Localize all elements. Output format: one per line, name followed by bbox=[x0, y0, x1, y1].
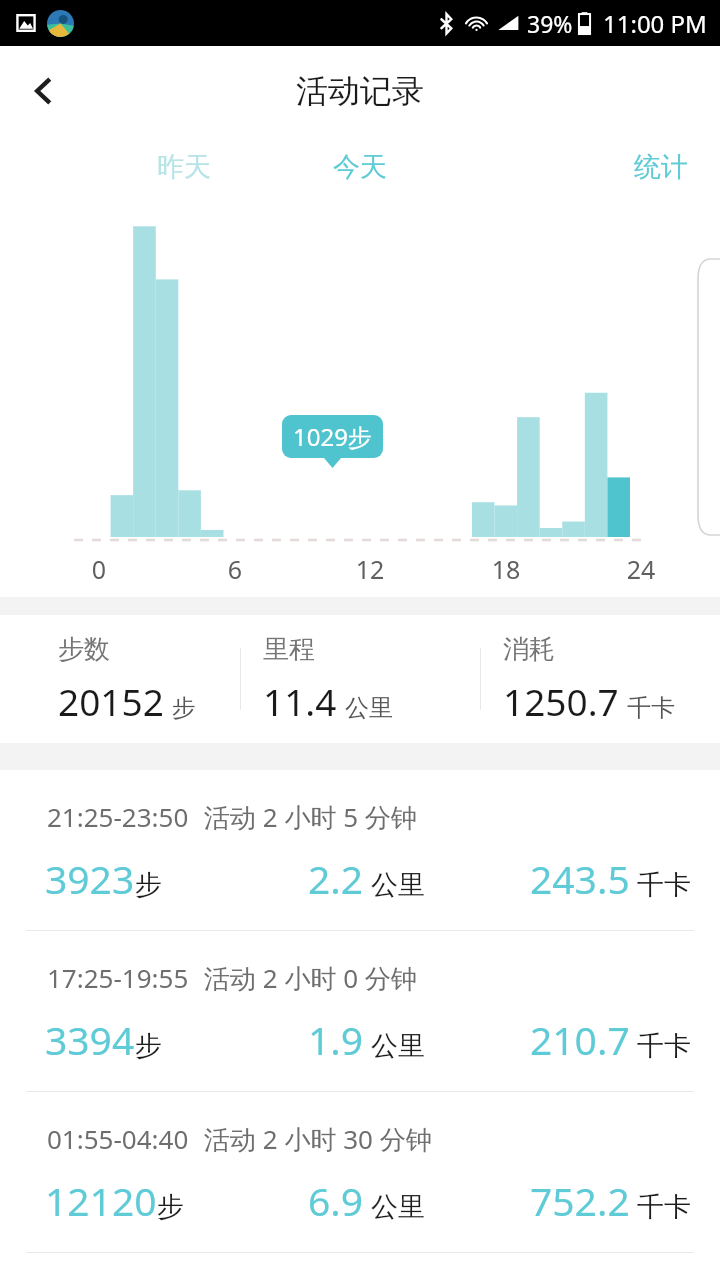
staticText: 步 bbox=[172, 693, 196, 723]
staticText: 1.9 bbox=[308, 1013, 364, 1066]
staticText: 20152 bbox=[58, 676, 164, 726]
staticText: 活动 2 小时 0 分钟 bbox=[204, 960, 417, 996]
staticText: 24 bbox=[617, 552, 665, 586]
staticText: 11.4 bbox=[263, 676, 337, 726]
staticText: 千卡 bbox=[627, 693, 675, 723]
staticText: 1250.7 bbox=[503, 676, 619, 726]
staticText: 12 bbox=[346, 552, 394, 586]
staticText: 公里 bbox=[371, 1029, 425, 1063]
button[interactable]: 步数 bbox=[0, 615, 240, 743]
staticText: 活动 2 小时 5 分钟 bbox=[204, 799, 417, 835]
staticText: 公里 bbox=[371, 1190, 425, 1224]
staticText: 243.5 bbox=[530, 852, 630, 905]
staticText: 步 bbox=[135, 868, 162, 902]
button[interactable]: 01:55-04:40 bbox=[0, 1092, 720, 1253]
staticText: 3394 bbox=[45, 1013, 135, 1066]
staticText: 11:00 PM bbox=[603, 7, 707, 40]
staticText: 步 bbox=[135, 1029, 162, 1063]
staticText: 统计 bbox=[634, 150, 688, 184]
button[interactable]: 昨天 bbox=[145, 144, 223, 190]
staticText: 21:25-23:50 bbox=[47, 799, 189, 834]
staticText: 39% bbox=[527, 8, 573, 39]
button[interactable]: 17:25-19:55 bbox=[0, 931, 720, 1092]
staticText: 步数 bbox=[58, 633, 110, 666]
staticText: 3923 bbox=[45, 852, 135, 905]
staticText: 消耗 bbox=[503, 633, 555, 666]
staticText: 里程 bbox=[263, 633, 315, 666]
button[interactable]: 21:25-23:50 bbox=[0, 770, 720, 931]
staticText: 公里 bbox=[345, 693, 393, 723]
staticText: 公里 bbox=[371, 868, 425, 902]
staticText: 1029步 bbox=[293, 420, 372, 453]
staticText: 12120 bbox=[45, 1174, 157, 1227]
staticText: 6 bbox=[211, 552, 259, 586]
staticText: 昨天 bbox=[157, 150, 211, 184]
staticText: 千卡 bbox=[637, 868, 691, 902]
button[interactable]: Back bbox=[12, 59, 76, 123]
staticText: 18 bbox=[482, 552, 530, 586]
staticText: 01:55-04:40 bbox=[47, 1121, 189, 1156]
staticText: 千卡 bbox=[637, 1190, 691, 1224]
button[interactable]: 今天 bbox=[321, 144, 399, 190]
staticText: 步 bbox=[157, 1190, 184, 1224]
button[interactable]: 统计 bbox=[622, 144, 700, 190]
staticText: 17:25-19:55 bbox=[47, 960, 189, 995]
staticText: 活动记录 bbox=[296, 71, 424, 111]
staticText: 千卡 bbox=[637, 1029, 691, 1063]
staticText: 2.2 bbox=[308, 852, 364, 905]
staticText: 今天 bbox=[333, 150, 387, 184]
staticText: 210.7 bbox=[530, 1013, 630, 1066]
button[interactable]: 里程 bbox=[241, 615, 480, 743]
staticText: 活动 2 小时 30 分钟 bbox=[204, 1121, 432, 1157]
staticText: 0 bbox=[75, 552, 123, 586]
staticText: 752.2 bbox=[530, 1174, 630, 1227]
button[interactable]: 消耗 bbox=[481, 615, 720, 743]
staticText: 6.9 bbox=[308, 1174, 364, 1227]
